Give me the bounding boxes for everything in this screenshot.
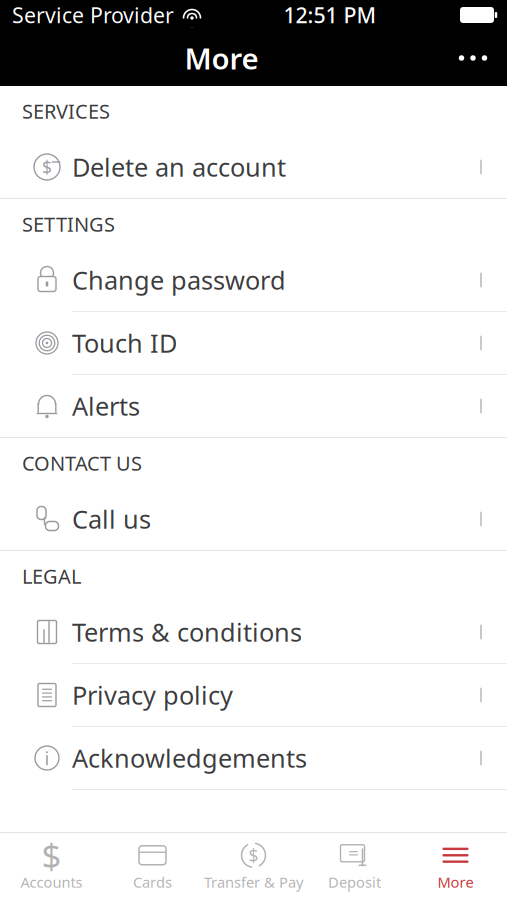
button[interactable]: $ [0,136,507,198]
button[interactable]: Touch ID [0,312,507,374]
staticText: Alerts [72,389,140,423]
staticText: Touch ID [72,326,177,360]
staticText: Acknowledgements [72,741,307,775]
staticText: CONTACT US [22,450,142,476]
staticText: Cards [133,872,172,892]
button[interactable]: More options [443,30,503,86]
staticText: More [437,872,473,892]
staticText: SERVICES [22,98,110,124]
button[interactable]: Call us [0,488,507,550]
staticText: Change password [72,263,286,297]
staticText: $ [41,832,61,878]
staticText: Call us [72,502,151,536]
staticText: Delete an account [72,150,286,184]
button[interactable]: Change password [0,249,507,311]
staticText: SETTINGS [22,211,115,237]
staticText: Accounts [20,872,82,892]
staticText: Service Provider [12,1,174,29]
staticText: LEGAL [22,563,81,589]
button[interactable]: Privacy policy [0,664,507,726]
staticText: Deposit [328,872,381,892]
staticText: Privacy policy [72,678,233,712]
staticText: Transfer & Pay [204,872,303,892]
button[interactable]: Deposit [304,832,405,900]
button[interactable]: $ [1,832,102,900]
button[interactable]: Terms & conditions [0,601,507,663]
staticText: i [44,746,49,770]
staticText: $ [42,155,52,178]
staticText: Terms & conditions [72,615,302,649]
staticText: $ [248,844,258,867]
button[interactable]: Alerts [0,375,507,437]
button[interactable]: More [405,832,506,900]
button[interactable]: Cards [102,832,203,900]
staticText: 12:51 PM [283,1,376,29]
button[interactable]: $ [203,832,304,900]
button[interactable]: i [0,727,507,789]
staticText: More [184,38,258,77]
